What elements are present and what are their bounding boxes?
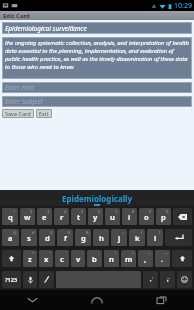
button[interactable]: t [71,208,86,225]
staticText: 2 [30,209,33,214]
staticText: < [148,251,151,256]
staticText: Epidemiological surveillance [5,24,87,33]
staticText: > [165,251,168,256]
staticText: 9 [149,209,152,214]
staticText: g [81,233,86,243]
staticText: : [81,251,83,256]
staticText: the ongoing systematic collection, analy… [5,39,189,71]
staticText: Epidemiologically [62,193,133,204]
button[interactable]: Epidemiologically [56,191,139,206]
staticText: " [49,251,51,256]
button[interactable]: Key [143,271,158,288]
staticText: 0 [166,209,169,214]
button[interactable]: u [105,208,120,225]
button[interactable]: , [138,250,153,267]
button[interactable]: g [75,229,91,246]
button[interactable]: Recent apps [129,290,194,310]
staticText: Edit Card [3,12,30,20]
staticText: v [76,254,81,264]
button[interactable]: k [129,229,145,246]
button[interactable]: Shift [172,250,192,267]
staticText: 6 [98,209,101,214]
button[interactable]: e [37,208,52,225]
staticText: m [125,254,133,264]
button[interactable]: Enter [165,229,192,246]
button[interactable]: s [21,229,37,246]
staticText: 3 [47,209,50,214]
button[interactable]: y [88,208,103,225]
staticText: s [27,233,31,243]
staticText: w [24,212,31,222]
button[interactable]: Hide keyboard [0,290,64,310]
button[interactable]: o [139,208,154,225]
button[interactable]: j [111,229,127,246]
button[interactable]: z [23,250,37,267]
staticText: - [105,230,107,235]
staticText: ( [141,230,143,235]
staticText: ! [115,251,117,256]
staticText: r [60,212,64,222]
button[interactable]: w [20,208,35,225]
staticText: Save Card [5,110,31,117]
button[interactable]: Voice input [23,271,37,288]
staticText: o [144,212,149,222]
button[interactable]: r [54,208,69,225]
staticText: ) [159,230,161,235]
staticText: + [122,230,125,235]
staticText: , [144,254,147,264]
staticText: k [135,233,140,243]
staticText: 10:29 [174,1,192,11]
staticText: 7 [115,209,118,214]
staticText: & [86,230,89,235]
staticText: x [44,254,49,264]
button[interactable]: n [104,250,119,267]
button[interactable]: x [39,250,53,267]
staticText: Enter Subject [5,97,43,106]
staticText: 1 [13,209,16,214]
staticText: h [99,233,104,243]
button[interactable]: a [2,229,19,246]
staticText: b [92,254,97,264]
button[interactable]: q [2,208,18,225]
staticText: e [42,212,47,222]
button[interactable]: d [39,229,55,246]
button[interactable]: l [147,229,163,246]
staticText: d [45,233,50,243]
staticText: i [128,212,131,222]
staticText: u [110,212,115,222]
staticText: . [161,254,164,264]
button[interactable]: h [93,229,109,246]
staticText: % [67,230,71,235]
button[interactable]: m [121,250,136,267]
button[interactable]: Home [64,290,129,310]
button[interactable]: b [87,250,102,267]
staticText: Exit [39,110,49,117]
button[interactable]: ?123 [2,271,21,288]
button[interactable]: f [57,229,73,246]
button[interactable]: Emoji [177,271,192,288]
button[interactable]: Delete [173,208,192,225]
staticText: t [77,212,81,222]
staticText: # [32,230,35,235]
button[interactable]: Save Card [2,109,34,118]
staticText: 5 [81,209,84,214]
staticText: a [8,233,13,243]
button[interactable]: . [155,250,170,267]
button[interactable]: v [71,250,85,267]
staticText: n [109,254,114,264]
button[interactable]: Shift [2,250,21,267]
button[interactable]: Key [160,271,175,288]
staticText: ? [132,251,134,256]
staticText: j [118,233,121,243]
staticText: l [154,233,157,243]
staticText: ' [66,251,67,256]
button[interactable]: p [156,208,171,225]
staticText: $ [50,230,53,235]
button[interactable]: c [55,250,69,267]
staticText: 4 [64,209,67,214]
button[interactable]: Handwriting [39,271,54,288]
button[interactable]: Exit [36,109,52,118]
button[interactable]: i [122,208,137,225]
staticText: f [64,233,67,243]
